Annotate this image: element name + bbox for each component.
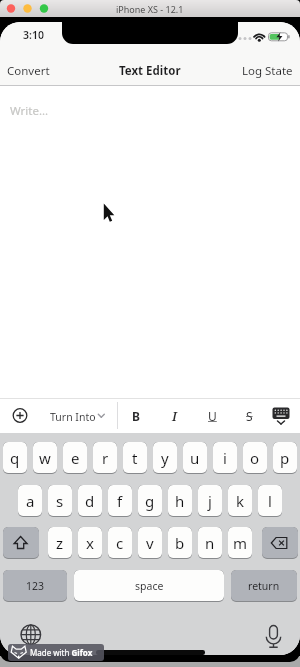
button[interactable]: h — [168, 485, 192, 517]
button[interactable] — [9, 405, 31, 427]
staticText: r — [102, 448, 109, 468]
staticText: f — [117, 491, 123, 511]
button[interactable]: c — [108, 527, 132, 559]
staticText: s — [56, 491, 64, 511]
button[interactable]: Log State — [242, 63, 293, 79]
button[interactable]: w — [33, 442, 57, 474]
staticText: B — [132, 408, 140, 424]
staticText: p — [280, 448, 290, 468]
staticText: c — [116, 533, 124, 553]
staticText: q — [10, 448, 20, 468]
staticText: b — [175, 533, 185, 553]
staticText: i — [223, 448, 227, 468]
button[interactable]: f — [108, 485, 132, 517]
staticText: I — [172, 408, 177, 425]
staticText: Text Editor — [119, 63, 181, 79]
staticText: w — [39, 448, 51, 468]
button[interactable]: e — [63, 442, 87, 474]
button[interactable]: i — [213, 442, 237, 474]
staticText: Write... — [10, 103, 49, 119]
button[interactable]: a — [18, 485, 42, 517]
staticText: space — [135, 579, 164, 593]
button[interactable]: n — [198, 527, 222, 559]
button[interactable]: t — [123, 442, 147, 474]
staticText: d — [85, 491, 95, 511]
button[interactable]: q — [3, 442, 27, 474]
staticText: z — [56, 533, 64, 553]
staticText: g — [145, 491, 155, 511]
staticText: x — [86, 533, 94, 553]
button[interactable]: m — [228, 527, 252, 559]
button[interactable]: s — [48, 485, 72, 517]
staticText: l — [268, 491, 272, 511]
button[interactable]: l — [258, 485, 282, 517]
button[interactable]: j — [198, 485, 222, 517]
button[interactable]: x — [78, 527, 102, 559]
staticText: o — [250, 448, 260, 468]
staticText: 123 — [26, 579, 45, 593]
button[interactable]: I — [162, 405, 186, 427]
staticText: u — [190, 448, 200, 468]
button[interactable]: y — [153, 442, 177, 474]
button[interactable]: b — [168, 527, 192, 559]
button[interactable] — [262, 527, 298, 559]
button[interactable]: S — [237, 405, 261, 427]
button[interactable]: v — [138, 527, 162, 559]
button[interactable]: space — [74, 570, 224, 602]
button[interactable]: U — [200, 405, 224, 427]
button[interactable]: d — [78, 485, 102, 517]
staticText: Made with Gifox — [30, 647, 93, 658]
button[interactable]: p — [273, 442, 297, 474]
staticText: h — [175, 491, 185, 511]
button[interactable]: B — [124, 405, 148, 427]
button[interactable]: u — [183, 442, 207, 474]
staticText: y — [161, 448, 169, 468]
staticText: Log State — [242, 63, 293, 79]
button[interactable] — [260, 621, 288, 649]
button[interactable]: k — [228, 485, 252, 517]
staticText: 3:10 — [23, 28, 44, 42]
staticText: S — [246, 408, 253, 424]
staticText: Turn Into — [50, 410, 96, 424]
button[interactable]: 123 — [3, 570, 67, 602]
button[interactable]: o — [243, 442, 267, 474]
button[interactable]: r — [93, 442, 117, 474]
staticText: U — [208, 408, 217, 424]
button[interactable]: return — [231, 570, 297, 602]
button[interactable]: Convert — [0, 63, 300, 79]
staticText: m — [233, 533, 248, 553]
button[interactable] — [269, 403, 295, 429]
staticText: Convert — [7, 63, 50, 79]
staticText: e — [71, 448, 80, 468]
staticText: a — [26, 491, 35, 511]
staticText: v — [146, 533, 154, 553]
staticText: return — [248, 579, 280, 593]
staticText: iPhone XS - 12.1 — [116, 3, 184, 15]
staticText: k — [236, 491, 245, 511]
button[interactable] — [3, 527, 39, 559]
staticText: j — [208, 491, 212, 511]
button[interactable]: g — [138, 485, 162, 517]
button[interactable]: Turn Into — [44, 405, 110, 427]
button[interactable] — [17, 621, 45, 649]
staticText: n — [205, 533, 215, 553]
staticText: t — [132, 448, 138, 468]
button[interactable]: z — [48, 527, 72, 559]
